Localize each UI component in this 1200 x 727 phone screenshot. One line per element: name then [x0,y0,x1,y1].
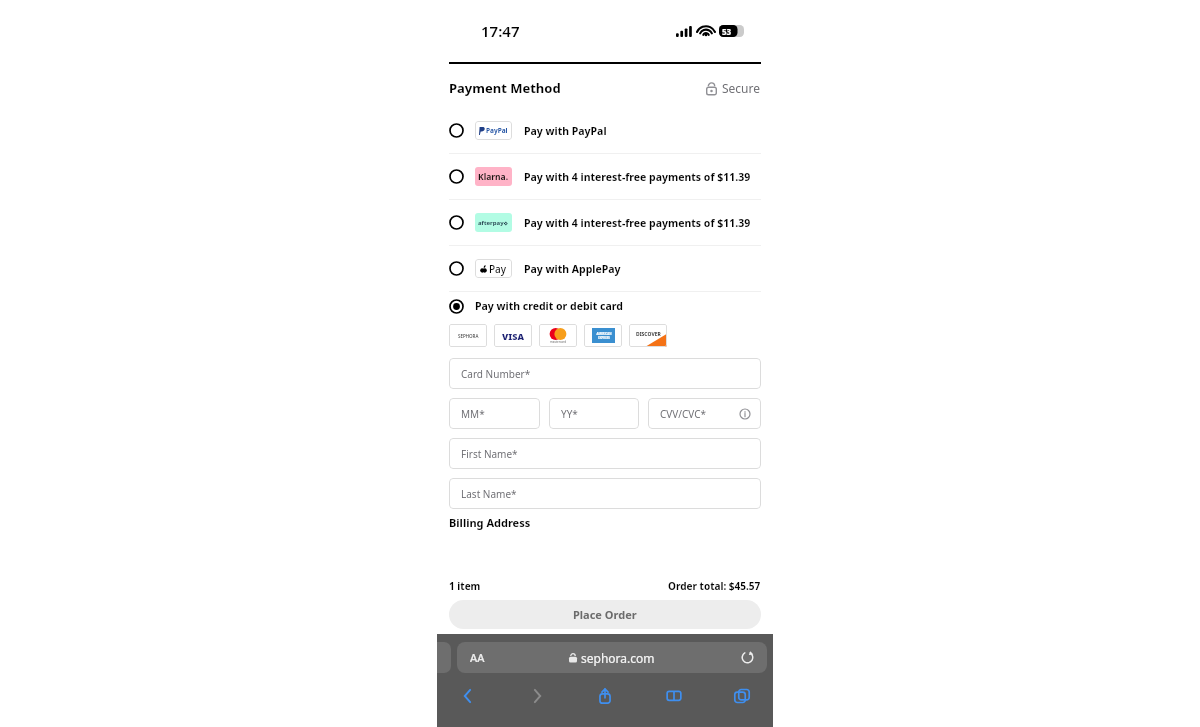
button[interactable]: Tabs [725,679,759,713]
button[interactable]: afterpay⟡ [437,200,773,245]
staticText: First Name* [461,447,518,461]
staticText: Klarna. [478,171,509,183]
staticText: Place Order [573,607,637,622]
staticText: 1 item [449,579,481,593]
staticText: SEPHORA [458,333,479,339]
staticText: Card Number* [461,367,531,381]
button[interactable]: PayPal [437,108,773,153]
staticText: AMERICAN EXPRESS [596,332,612,340]
staticText: Billing Address [449,515,531,530]
other: Reload [741,651,754,664]
staticText: CVV/CVC* [660,407,707,421]
button[interactable]: Klarna. [437,154,773,199]
staticText: afterpay⟡ [478,219,509,227]
staticText: Last Name* [461,487,517,501]
button[interactable]: Pay with credit or debit card [437,292,773,320]
staticText: Pay with ApplePay [524,262,621,276]
button[interactable]: Back [451,679,485,713]
staticText: Pay with 4 interest-free payments of $11… [524,170,751,184]
staticText: Secure [722,80,761,96]
button[interactable]: Bookmarks [657,679,691,713]
button[interactable]: Pay [437,246,773,291]
staticText: mastercard [550,340,567,344]
staticText: Pay with credit or debit card [475,299,623,313]
button[interactable]: Card Number* [449,358,761,389]
staticText: 53 [722,26,732,37]
staticText: YY* [561,407,578,421]
button[interactable]: Place Order [449,600,761,629]
button[interactable]: First Name* [449,438,761,469]
button[interactable]: MM* [449,398,540,429]
button[interactable]: CVV/CVC* [648,398,761,429]
staticText: Order total: $45.57 [668,579,761,593]
button[interactable]: YY* [549,398,639,429]
staticText: AA [470,650,485,665]
staticText: PayPal [486,126,508,135]
staticText: Payment Method [449,79,561,97]
button[interactable]: Share [588,679,622,713]
staticText: 17:47 [481,21,520,41]
staticText: VISA [502,330,524,342]
button[interactable]: AA [457,642,767,673]
button[interactable]: Forward [520,679,554,713]
staticText: Pay [489,262,507,276]
staticText: Pay with PayPal [524,124,607,138]
staticText: DISCOVER [636,331,661,338]
staticText: MM* [461,407,485,421]
staticText: sephora.com [581,650,655,666]
staticText: Pay with 4 interest-free payments of $11… [524,216,751,230]
button[interactable]: Last Name* [449,478,761,509]
